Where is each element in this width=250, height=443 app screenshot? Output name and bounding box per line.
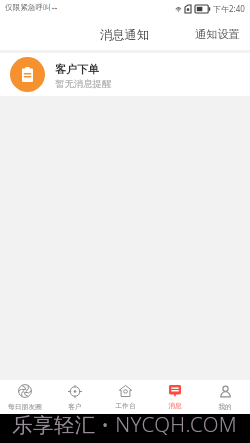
staticText: 工作台 <box>115 401 136 410</box>
staticText: 消息通知 <box>100 27 150 42</box>
button[interactable]: 工作台 <box>100 380 150 414</box>
staticText: 下午2:40 <box>213 3 245 14</box>
button[interactable]: 消息 <box>150 380 200 414</box>
staticText: 客户 <box>68 402 82 411</box>
button[interactable]: 我的 <box>200 380 250 414</box>
staticText: 每日朋友圈 <box>8 402 42 411</box>
button[interactable]: 通知设置 <box>185 16 250 50</box>
staticText: 仅限紧急呼叫 <box>5 3 51 13</box>
staticText: 通知设置 <box>195 27 240 41</box>
staticText: 暂无消息提醒 <box>55 78 112 90</box>
button[interactable]: 客户 <box>50 380 100 414</box>
staticText: 乐享轻汇 • NYCQH.COM <box>12 410 238 438</box>
staticText: 我的 <box>218 402 232 411</box>
staticText: 客户下单 <box>55 62 99 76</box>
button[interactable]: 每日朋友圈 <box>0 380 50 414</box>
button[interactable]: 客户下单 <box>0 53 250 96</box>
staticText: 消息 <box>168 401 182 410</box>
